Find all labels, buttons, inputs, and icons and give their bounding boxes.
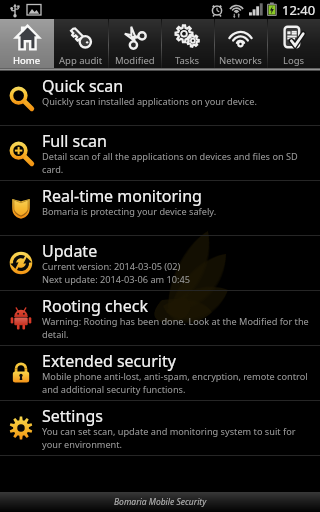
button[interactable]: Tasks	[161, 19, 214, 71]
staticText: Tasks	[175, 54, 200, 67]
button[interactable]: Logs	[267, 19, 320, 71]
staticText: Rooting check	[42, 295, 148, 317]
staticText: Warning: Rooting has been done. Look at …	[42, 315, 309, 328]
staticText: Modified	[115, 54, 155, 67]
staticText: Full scan	[42, 130, 107, 152]
button[interactable]: App audit	[54, 19, 108, 71]
staticText: Update	[42, 240, 98, 262]
button[interactable]: Home	[0, 19, 54, 71]
staticText: App audit	[59, 54, 103, 67]
button[interactable]: Real-time monitoring	[0, 181, 320, 235]
staticText: Quickly scan installed applications on y…	[42, 95, 257, 108]
staticText: Detail scan of all the applications on d…	[42, 150, 298, 163]
staticText: card.	[42, 163, 64, 176]
staticText: Home	[13, 54, 41, 67]
staticText: 12:40	[282, 1, 316, 19]
staticText: Real-time monitoring	[42, 185, 202, 207]
button[interactable]: Modified	[108, 19, 161, 71]
button[interactable]: Settings	[0, 401, 320, 455]
staticText: Quick scan	[42, 75, 124, 97]
staticText: Networks	[219, 54, 262, 67]
button[interactable]: Full scan	[0, 126, 320, 180]
staticText: Next update: 2014-03-06 am 10:45	[42, 273, 190, 286]
staticText: and additional security functions.	[42, 383, 186, 396]
staticText: Bomaria is protecting your device safely…	[42, 205, 217, 218]
staticText: Settings	[42, 405, 103, 427]
button[interactable]: Update	[0, 236, 320, 290]
button[interactable]: Rooting check	[0, 291, 320, 345]
staticText: Bomaria Mobile Security	[114, 496, 207, 508]
staticText: You can set scan, update and monitoring …	[42, 425, 296, 438]
staticText: your environment.	[42, 438, 123, 451]
staticText: detail.	[42, 328, 69, 341]
staticText: Extended security	[42, 350, 176, 372]
button[interactable]: Extended security	[0, 346, 320, 400]
staticText: Logs	[283, 54, 305, 67]
staticText: Current version: 2014-03-05 (02)	[42, 260, 181, 273]
button[interactable]: Networks	[214, 19, 267, 71]
button[interactable]: Quick scan	[0, 71, 320, 125]
staticText: Mobile phone anti-lost, anti-spam, encry…	[42, 370, 308, 383]
